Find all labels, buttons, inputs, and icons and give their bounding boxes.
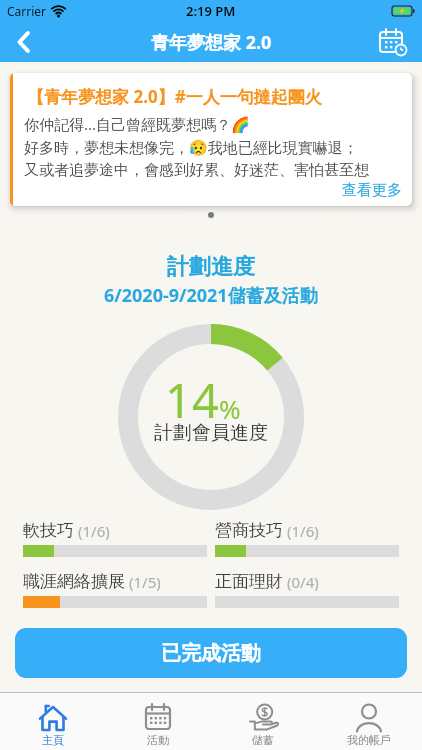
staticText: 已完成活動	[161, 641, 261, 666]
button[interactable]: 已完成活動	[15, 628, 407, 678]
staticText: (1/6)	[78, 521, 110, 541]
staticText: 活動	[147, 733, 169, 747]
staticText: 主頁	[42, 733, 64, 747]
staticText: (1/6)	[287, 521, 319, 541]
staticText: 儲蓄	[252, 733, 274, 747]
button[interactable]	[8, 26, 40, 58]
staticText: 計劃會員進度	[154, 421, 268, 445]
staticText: 你仲記得...自己曾經既夢想嗎？🌈 好多時，夢想未想像完，😥我地已經比現實嚇退；…	[24, 114, 369, 180]
button[interactable]	[378, 27, 408, 57]
staticText: 2:19 PM	[186, 2, 236, 20]
button[interactable]: 查看更多	[342, 181, 402, 200]
button[interactable]: 活動	[105, 693, 210, 750]
staticText: 我的帳戶	[347, 733, 391, 747]
staticText: (1/5)	[129, 572, 161, 592]
staticText: Carrier	[7, 3, 47, 19]
button[interactable]: 【青年夢想家 2.0】#一人一句撻起團火	[10, 73, 412, 206]
staticText: 職涯網絡擴展	[23, 571, 125, 592]
staticText: 14	[165, 368, 219, 432]
button[interactable]: 主頁	[0, 693, 105, 750]
staticText: %	[219, 391, 241, 426]
staticText: 青年夢想家 2.0	[151, 30, 272, 55]
staticText: 軟技巧	[23, 520, 74, 541]
button[interactable]: 我的帳戶	[316, 693, 422, 750]
staticText: 正面理財	[215, 571, 283, 592]
staticText: 計劃進度	[167, 253, 255, 281]
staticText: 營商技巧	[215, 520, 283, 541]
staticText: 【青年夢想家 2.0】#一人一句撻起團火	[27, 85, 322, 108]
button[interactable]: 儲蓄	[210, 693, 316, 750]
staticText: 6/2020-9/2021儲蓄及活動	[104, 283, 318, 308]
staticText: (0/4)	[287, 572, 319, 592]
